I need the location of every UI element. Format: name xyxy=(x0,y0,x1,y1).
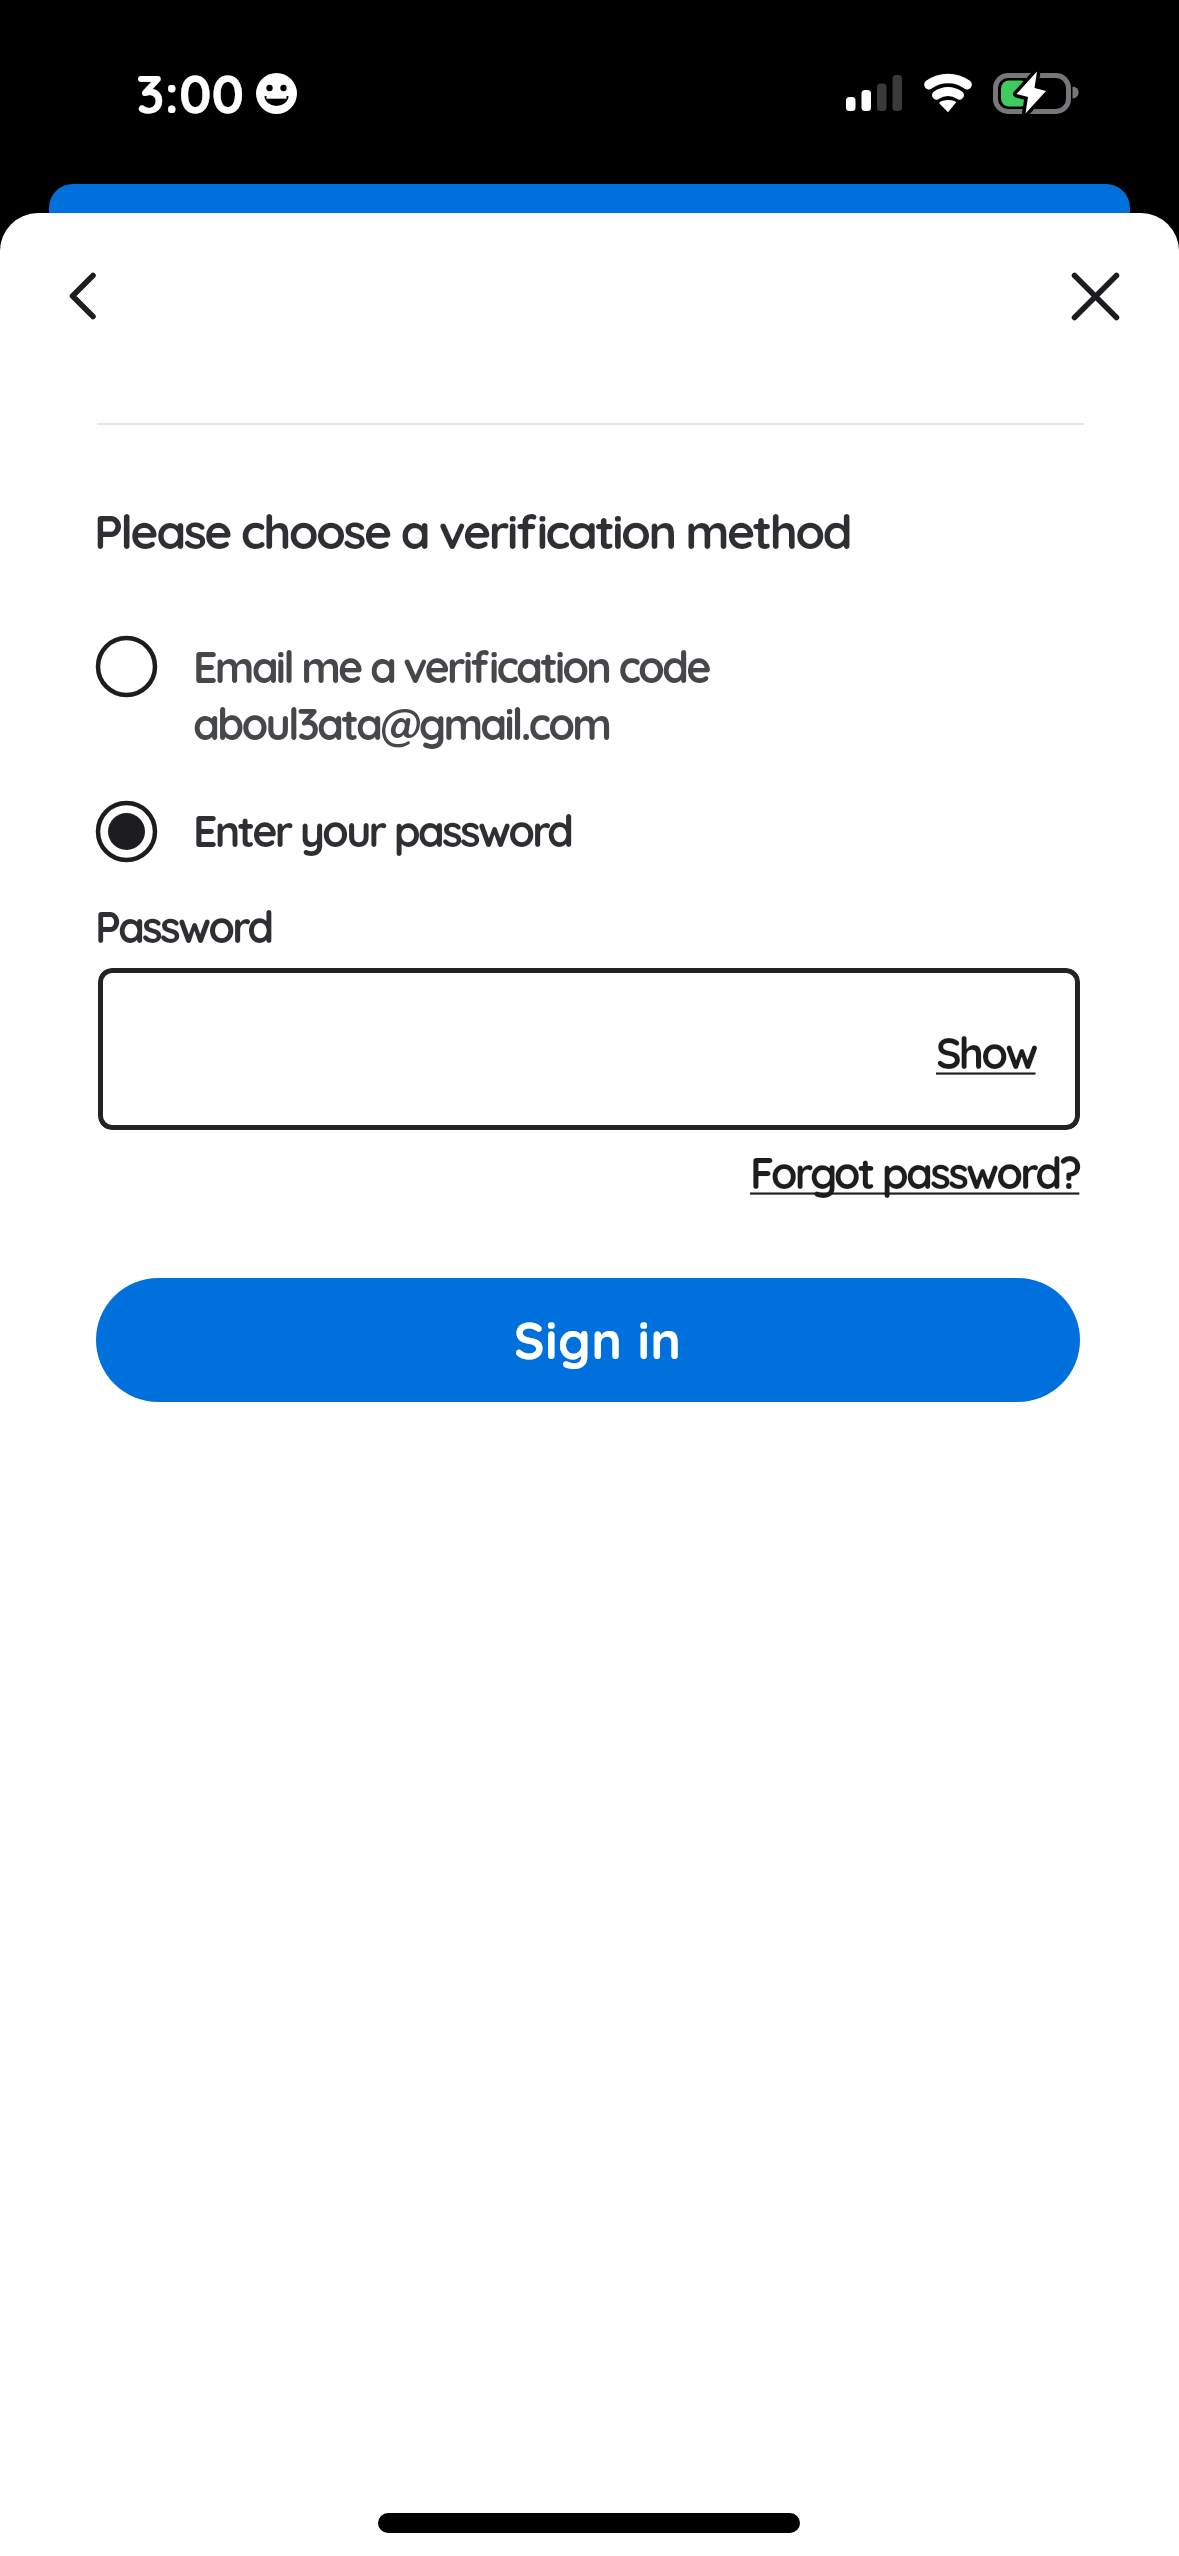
button[interactable]: Show xyxy=(98,968,1080,1130)
button[interactable] xyxy=(80,790,680,880)
button[interactable]: Sign in xyxy=(96,1278,1080,1402)
button[interactable]: Show xyxy=(936,1026,1036,1080)
button[interactable] xyxy=(80,620,800,770)
staticText: Please choose a verification method xyxy=(94,501,851,561)
staticText: Enter your password xyxy=(193,804,572,858)
staticText: Email me a verification code xyxy=(193,640,709,694)
staticText: aboul3ata@gmail.com xyxy=(193,697,610,751)
staticText: Password xyxy=(95,900,272,954)
staticText: 3:00 xyxy=(136,60,245,126)
button[interactable] xyxy=(1044,245,1146,347)
button[interactable]: Forgot password? xyxy=(750,1146,1080,1200)
staticText: Sign in xyxy=(514,1308,682,1372)
button[interactable] xyxy=(32,245,134,347)
